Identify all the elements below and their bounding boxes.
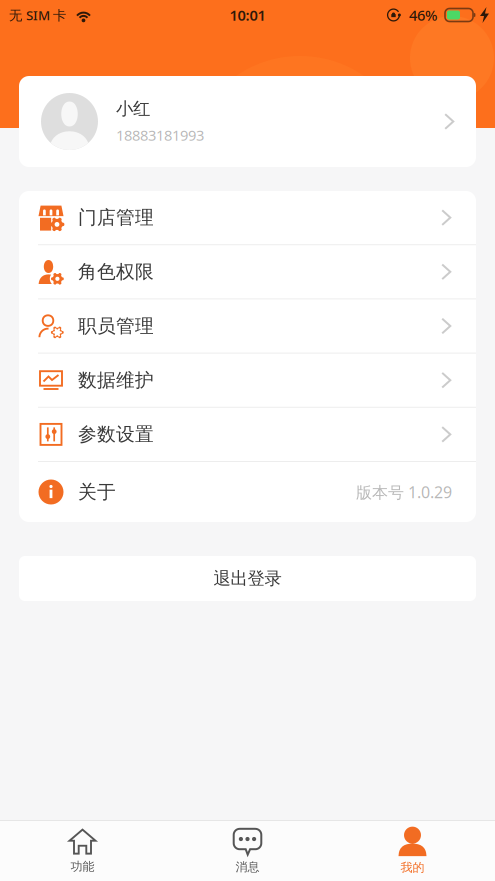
button[interactable]: 退出登录: [19, 556, 476, 601]
button[interactable]: 参数设置: [19, 408, 476, 461]
button[interactable]: 消息: [165, 821, 330, 881]
staticText: 版本号 1.0.29: [356, 481, 452, 503]
staticText: 46%: [409, 5, 437, 25]
staticText: 10:01: [229, 5, 265, 25]
staticText: 关于: [78, 480, 116, 503]
button[interactable]: 我的: [330, 821, 495, 881]
staticText: 18883181993: [116, 125, 204, 145]
staticText: 门店管理: [78, 206, 154, 229]
staticText: 功能: [70, 859, 94, 874]
staticText: 消息: [235, 860, 259, 874]
button[interactable]: 角色权限: [19, 245, 476, 298]
staticText: 我的: [400, 860, 424, 875]
button[interactable]: 职员管理: [19, 299, 476, 353]
staticText: 小红: [116, 98, 150, 119]
staticText: 角色权限: [78, 260, 154, 283]
button[interactable]: 关于: [19, 462, 476, 522]
button[interactable]: 门店管理: [19, 191, 476, 244]
staticText: 参数设置: [78, 423, 154, 446]
button[interactable]: 小红: [19, 76, 476, 167]
staticText: 数据维护: [78, 369, 154, 392]
button[interactable]: 功能: [0, 821, 165, 881]
staticText: 退出登录: [213, 568, 281, 589]
button[interactable]: 数据维护: [19, 354, 476, 407]
staticText: 无 SIM 卡: [9, 6, 66, 24]
staticText: 职员管理: [78, 314, 154, 337]
